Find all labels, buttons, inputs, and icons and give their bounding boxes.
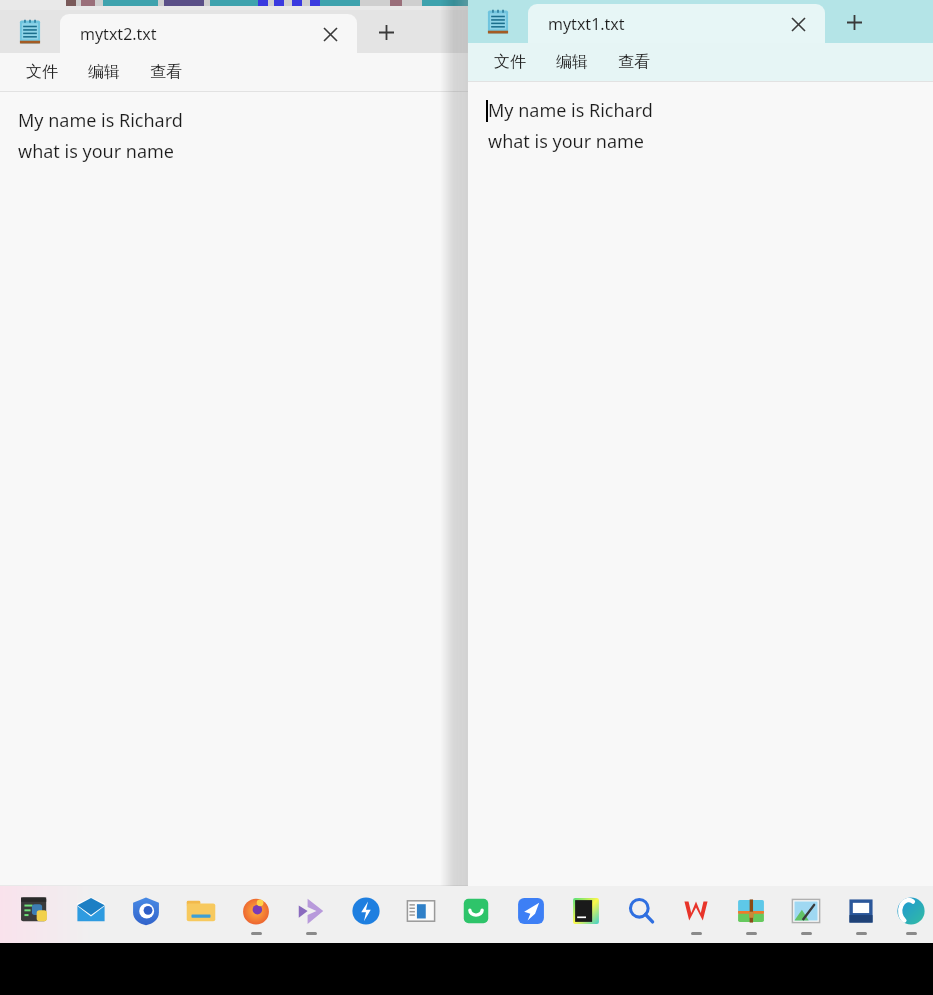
staticText: what is your name [488,129,645,154]
button[interactable]: mytxt2.txt [60,14,357,53]
button[interactable]: File Explorer [173,886,228,943]
button[interactable]: Visual Studio [283,886,338,943]
button[interactable]: New tab [837,5,871,39]
staticText: what is your name [18,139,175,164]
button[interactable]: Security [118,886,173,943]
button[interactable]: My name is Richard [468,82,933,886]
button[interactable]: App [503,886,558,943]
button[interactable]: My name is Richard [0,92,470,885]
button[interactable]: Reader [393,886,448,943]
staticText: My name is Richard [18,108,183,133]
button[interactable]: App [338,886,393,943]
staticText: 文件 [26,62,58,82]
button[interactable]: Close tab [317,21,343,47]
staticText: 编辑 [556,52,588,72]
button[interactable]: 文件 [486,48,534,76]
button[interactable]: Photos [778,886,833,943]
staticText: 查看 [618,52,650,72]
button[interactable]: 查看 [142,58,190,86]
button[interactable]: 文件 [18,58,66,86]
staticText: My name is Richard [488,98,653,123]
button[interactable]: PyCharm [558,886,613,943]
button[interactable]: New tab [369,15,403,49]
button[interactable]: Firefox [228,886,283,943]
button[interactable]: WPS Office [668,886,723,943]
button[interactable]: Search [613,886,668,943]
button[interactable]: mytxt1.txt [528,4,825,43]
button[interactable]: Edge [888,886,933,943]
button[interactable]: Close tab [785,11,811,37]
button[interactable]: 编辑 [80,58,128,86]
button[interactable]: Mail [63,886,118,943]
button[interactable]: Archiver [723,886,778,943]
button[interactable]: 编辑 [548,48,596,76]
button[interactable]: Word [833,886,888,943]
staticText: 编辑 [88,62,120,82]
button[interactable]: App [448,886,503,943]
button[interactable]: 查看 [610,48,658,76]
staticText: 查看 [150,62,182,82]
staticText: 文件 [494,52,526,72]
staticText: mytxt1.txt [548,13,785,35]
staticText: mytxt2.txt [80,23,317,45]
button[interactable]: Terminal [8,886,63,943]
